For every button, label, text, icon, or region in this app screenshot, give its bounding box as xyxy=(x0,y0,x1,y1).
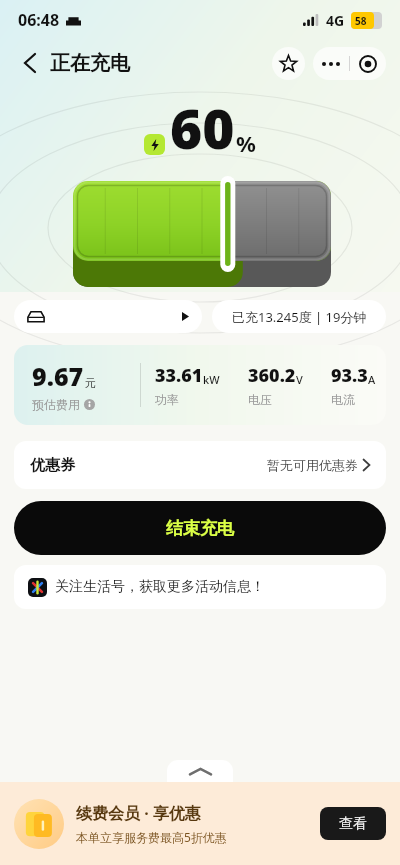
button[interactable]: 优惠券 xyxy=(14,441,386,489)
staticText: 93.3 xyxy=(331,363,368,388)
staticText: 360.2 xyxy=(248,363,296,388)
staticText: V xyxy=(296,372,303,387)
staticText: 查看 xyxy=(339,815,367,833)
staticText: 正在充电 xyxy=(50,51,130,76)
staticText: 功率 xyxy=(155,392,179,407)
button[interactable]: 关注生活号，获取更多活动信息！ xyxy=(14,565,386,609)
staticText: 58 xyxy=(355,14,367,28)
staticText: 06:48 xyxy=(18,9,60,31)
staticText: 9.67 xyxy=(32,359,84,393)
staticText: 60 xyxy=(170,90,235,165)
staticText: kW xyxy=(203,372,220,387)
staticText: 本单立享服务费最高5折优惠 xyxy=(76,829,227,845)
staticText: 4G xyxy=(326,11,345,30)
staticText: 暂无可用优惠券 xyxy=(267,457,358,473)
staticText: 电压 xyxy=(248,392,272,407)
button[interactable]: More options xyxy=(313,47,349,80)
staticText: % xyxy=(236,128,256,158)
staticText: 预估费用 xyxy=(32,397,80,412)
staticText: 优惠券 xyxy=(30,456,75,475)
staticText: 结束充电 xyxy=(166,518,234,539)
staticText: 续费会员 · 享优惠 xyxy=(76,802,201,824)
button[interactable]: Close xyxy=(350,47,386,80)
button[interactable]: Back xyxy=(14,48,44,78)
button[interactable]: 结束充电 xyxy=(14,501,386,555)
button[interactable]: 查看 xyxy=(320,807,386,840)
staticText: 关注生活号，获取更多活动信息！ xyxy=(55,578,265,596)
staticText: 已充13.245度 | 19分钟 xyxy=(232,308,367,326)
button[interactable] xyxy=(14,300,202,333)
staticText: A xyxy=(368,372,376,387)
button[interactable]: Expand xyxy=(167,760,233,783)
staticText: 元 xyxy=(85,376,96,390)
staticText: 33.61 xyxy=(155,363,203,388)
button[interactable]: Favorite xyxy=(272,47,305,80)
staticText: 电流 xyxy=(331,392,355,407)
